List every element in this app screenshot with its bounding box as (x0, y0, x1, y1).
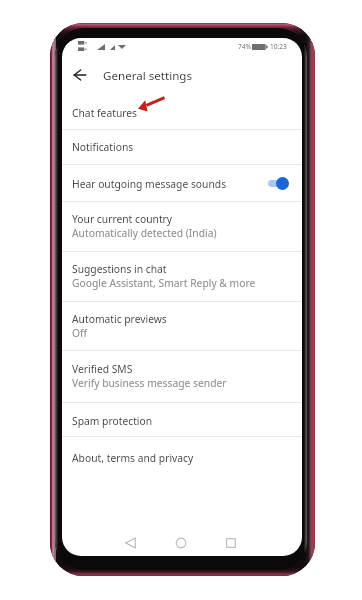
staticText: Notifications (72, 140, 134, 154)
button[interactable]: Notifications (62, 129, 302, 165)
staticText: General settings (103, 68, 193, 84)
staticText: Automatic previews (72, 312, 167, 326)
staticText: Your current country (72, 212, 173, 226)
button[interactable]: Your current country (62, 202, 302, 252)
button[interactable]: Chat features (62, 96, 302, 130)
staticText: Verify business message sender (72, 376, 227, 390)
staticText: Automatically detected (India) (72, 226, 217, 240)
button[interactable]: Back (123, 535, 139, 551)
button[interactable]: Suggestions in chat (62, 252, 302, 302)
button[interactable]: Hear outgoing message sounds (62, 165, 302, 202)
button[interactable]: Automatic previews (62, 303, 302, 351)
staticText: 74% (238, 42, 252, 51)
button[interactable]: Spam protection (62, 403, 302, 437)
staticText: Google Assistant, Smart Reply & more (72, 276, 256, 290)
button[interactable]: Verified SMS (62, 351, 302, 403)
staticText: About, terms and privacy (72, 451, 194, 465)
staticText: Spam protection (72, 414, 153, 428)
staticText: Off (72, 326, 88, 340)
button[interactable]: Home (173, 535, 189, 551)
staticText: Suggestions in chat (72, 262, 167, 276)
button[interactable]: Recents (223, 535, 239, 551)
button[interactable]: About, terms and privacy (62, 437, 302, 474)
staticText: Verified SMS (72, 362, 133, 376)
staticText: Chat features (72, 106, 138, 120)
button[interactable]: Back (69, 64, 91, 86)
staticText: Hear outgoing message sounds (72, 177, 227, 191)
staticText: 10:23 (270, 42, 287, 51)
